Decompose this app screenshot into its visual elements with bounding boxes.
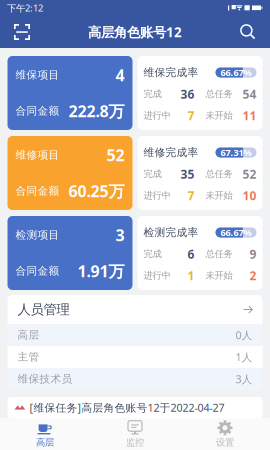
staticText: 60.25万	[68, 180, 124, 202]
staticText: 52	[106, 144, 124, 166]
staticText: 7	[187, 187, 194, 203]
button[interactable]: 主管	[7, 346, 262, 368]
staticText: 监控	[126, 437, 144, 448]
staticText: 设置	[216, 437, 234, 448]
staticText: 66.67%	[220, 226, 251, 239]
staticText: 36	[180, 86, 194, 102]
staticText: 进行中	[143, 190, 170, 201]
staticText: 0人	[235, 328, 252, 342]
staticText: 3	[115, 224, 124, 246]
staticText: 检测完成率	[143, 226, 198, 239]
staticText: 总任务	[205, 168, 232, 180]
staticText: 3人	[235, 372, 252, 386]
staticText: 高层角色账号12	[88, 23, 182, 41]
staticText: 总任务	[205, 248, 232, 260]
button[interactable]: 人员管理	[7, 295, 262, 324]
staticText: 合同金额	[15, 264, 59, 277]
staticText: 67.31%	[220, 146, 251, 159]
button[interactable]: 扫一扫	[6, 16, 38, 48]
button[interactable]: 搜索	[232, 16, 264, 48]
staticText: 2	[249, 267, 256, 283]
staticText: 1人	[235, 350, 252, 364]
staticText: 1.91万	[77, 260, 124, 282]
staticText: 4	[115, 64, 124, 86]
staticText: 人员管理	[17, 301, 69, 318]
staticText: 合同金额	[15, 104, 59, 117]
staticText: 完成	[143, 168, 161, 180]
staticText: 完成	[143, 248, 161, 260]
staticText: 11	[242, 107, 256, 123]
staticText: 未开始	[205, 270, 232, 281]
staticText: 222.8万	[68, 100, 124, 122]
button[interactable]: 维保技术员	[7, 368, 262, 390]
button[interactable]: 设置	[180, 419, 270, 449]
staticText: 总任务	[205, 88, 232, 100]
staticText: 主管	[17, 350, 39, 363]
staticText: 9	[249, 246, 256, 262]
staticText: [维保任务]高层角色账号12于2022-04-27	[29, 400, 224, 415]
staticText: 下午2:12	[7, 2, 43, 14]
staticText: 维保完成率	[143, 66, 198, 79]
staticText: 1	[187, 267, 194, 283]
staticText: 35	[180, 166, 194, 182]
staticText: 维修完成率	[143, 146, 198, 159]
button[interactable]: 监控	[90, 419, 180, 449]
staticText: 维保项目	[15, 68, 59, 81]
button[interactable]: 高层	[0, 419, 90, 449]
staticText: 维保技术员	[17, 372, 72, 385]
staticText: 54	[242, 86, 256, 102]
staticText: 进行中	[143, 270, 170, 281]
staticText: 10	[242, 187, 256, 203]
staticText: 进行中	[143, 110, 170, 121]
staticText: 检测项目	[15, 228, 59, 241]
staticText: 维修项目	[15, 148, 59, 161]
staticText: 高层	[17, 328, 39, 341]
staticText: 合同金额	[15, 184, 59, 197]
staticText: 高层	[36, 437, 54, 448]
staticText: 未开始	[205, 110, 232, 121]
staticText: 完成	[143, 88, 161, 100]
staticText: 66.67%	[220, 66, 251, 79]
staticText: 52	[242, 166, 256, 182]
staticText: 7	[187, 107, 194, 123]
staticText: 未开始	[205, 190, 232, 201]
button[interactable]: 高层	[7, 324, 262, 346]
staticText: 6	[187, 246, 194, 262]
